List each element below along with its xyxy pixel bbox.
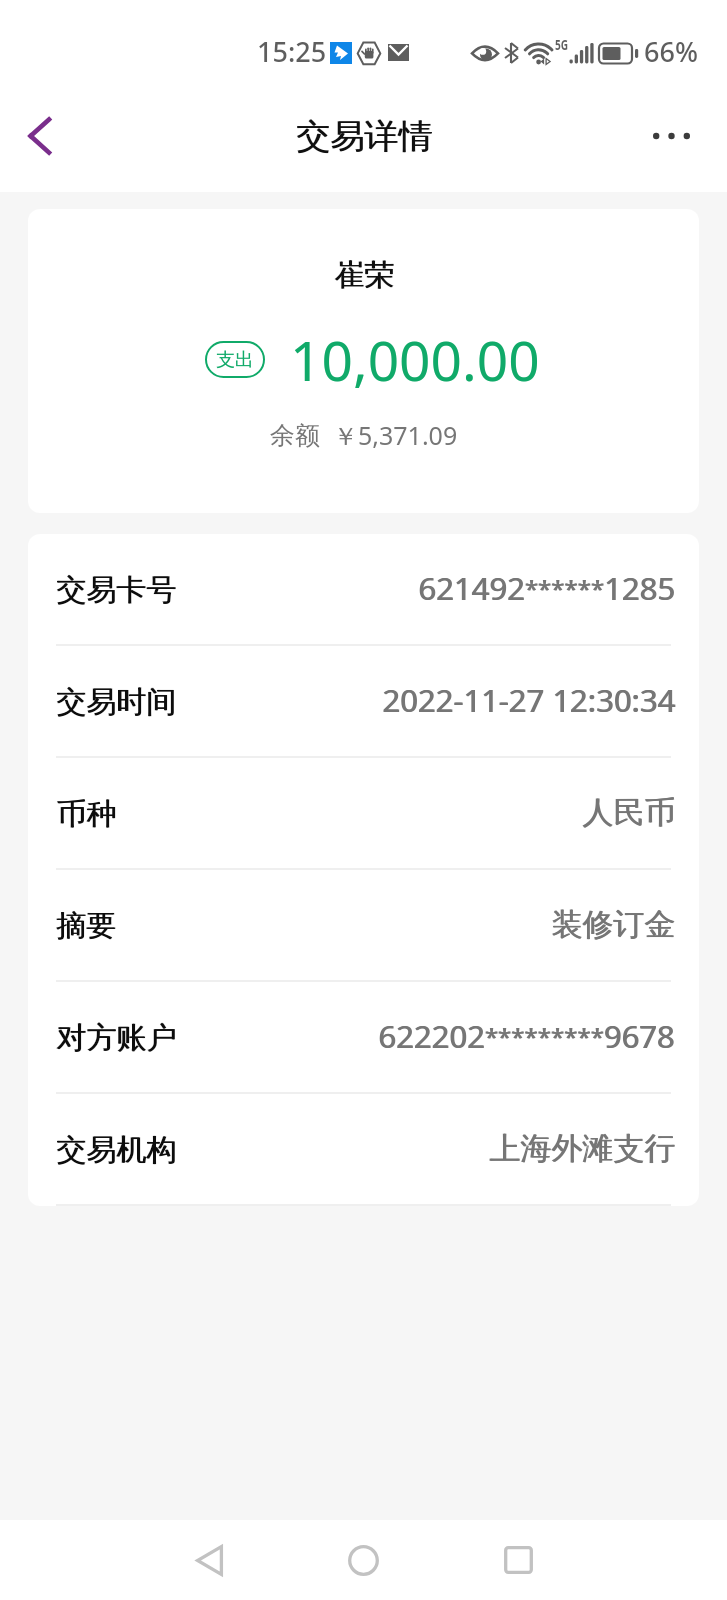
staticText: 对方账户 <box>57 1019 177 1057</box>
staticText: 交易时间 <box>57 683 177 721</box>
staticText: 支出 <box>216 348 254 372</box>
staticText: 66% <box>644 33 698 70</box>
staticText: 621492******1285 <box>418 567 675 609</box>
staticText: 装修订金 <box>551 905 675 944</box>
button[interactable]: More options <box>636 101 706 171</box>
staticText: 对方账户 <box>56 1019 176 1057</box>
staticText: 上海外滩支行 <box>489 1129 675 1168</box>
staticText: 崔荣 <box>335 256 395 294</box>
staticText: 币种 <box>56 795 116 833</box>
button[interactable]: 交易卡号 <box>28 534 699 646</box>
staticText: 622202*********9678 <box>378 1015 675 1057</box>
staticText: 2022-11-27 12:30:34 <box>383 679 676 721</box>
staticText: 621492******1285 <box>419 567 676 609</box>
button[interactable]: 币种 <box>28 758 699 870</box>
staticText: 摘要 <box>57 907 117 945</box>
staticText: 2022-11-27 12:30:34 <box>382 679 675 721</box>
staticText: 5G <box>555 34 569 54</box>
staticText: 交易卡号 <box>56 571 176 609</box>
staticText: 余额 <box>270 420 320 451</box>
button[interactable]: 摘要 <box>28 870 699 982</box>
staticText: ￥5,371.09 <box>333 418 458 452</box>
staticText: 622202*********9678 <box>379 1015 676 1057</box>
button[interactable]: Home <box>311 1520 415 1600</box>
staticText: 装修订金 <box>552 905 676 944</box>
button[interactable]: 交易时间 <box>28 646 699 758</box>
staticText: 15:25 <box>257 33 327 70</box>
button[interactable]: Recent apps <box>466 1520 570 1600</box>
button[interactable]: 对方账户 <box>28 982 699 1094</box>
button[interactable]: Back <box>157 1520 261 1600</box>
button[interactable]: 交易机构 <box>28 1094 699 1206</box>
staticText: 崔荣 <box>334 256 394 294</box>
staticText: 上海外滩支行 <box>490 1129 676 1168</box>
staticText: 交易详情 <box>296 115 432 158</box>
staticText: 交易机构 <box>56 1131 176 1169</box>
staticText: 交易详情 <box>297 115 433 158</box>
button[interactable]: Back <box>5 101 75 171</box>
staticText: 币种 <box>57 795 117 833</box>
staticText: 交易机构 <box>57 1131 177 1169</box>
staticText: 交易时间 <box>56 683 176 721</box>
staticText: 交易卡号 <box>57 571 177 609</box>
staticText: 10,000.00 <box>290 322 540 397</box>
staticText: 人民币 <box>583 793 676 832</box>
staticText: 摘要 <box>56 907 116 945</box>
staticText: 人民币 <box>582 793 675 832</box>
